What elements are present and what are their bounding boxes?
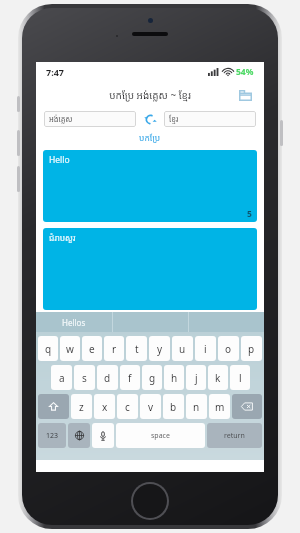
staticText: r bbox=[112, 342, 117, 356]
button[interactable]: Change keyboard language bbox=[68, 423, 90, 448]
button[interactable]: y bbox=[149, 336, 170, 361]
staticText: a bbox=[59, 371, 65, 385]
staticText: v bbox=[148, 400, 154, 414]
button[interactable]: c bbox=[117, 394, 138, 419]
button[interactable]: r bbox=[104, 336, 124, 361]
staticText: n bbox=[193, 400, 200, 414]
staticText: c bbox=[125, 400, 130, 414]
staticText: បកប្រែ bbox=[139, 132, 161, 144]
staticText: l bbox=[239, 371, 242, 385]
button[interactable]: z bbox=[71, 394, 92, 419]
button[interactable]: x bbox=[94, 394, 115, 419]
staticText: d bbox=[104, 371, 111, 385]
staticText: Hellos bbox=[62, 317, 86, 328]
button[interactable]: n bbox=[186, 394, 207, 419]
button[interactable]: v bbox=[140, 394, 161, 419]
staticText: 5 bbox=[247, 208, 252, 220]
staticText: z bbox=[79, 400, 84, 414]
button[interactable]: m bbox=[209, 394, 230, 419]
staticText: f bbox=[128, 371, 132, 385]
staticText: i bbox=[204, 342, 207, 356]
button[interactable]: អង់គ្លេស bbox=[44, 111, 136, 127]
staticText: o bbox=[225, 342, 232, 356]
button[interactable]: p bbox=[241, 336, 262, 361]
button[interactable]: Hello bbox=[43, 150, 257, 222]
button[interactable]: return bbox=[207, 423, 262, 448]
staticText: j bbox=[195, 371, 198, 385]
button[interactable]: ជំរាបសួរ bbox=[43, 228, 257, 310]
button[interactable]: j bbox=[186, 365, 206, 390]
staticText: s bbox=[82, 371, 87, 385]
button[interactable]: Hellos bbox=[36, 312, 112, 332]
button[interactable]: i bbox=[195, 336, 216, 361]
staticText: space bbox=[151, 431, 170, 441]
staticText: 7:47 bbox=[46, 66, 64, 78]
button[interactable]: Swap languages bbox=[136, 109, 164, 129]
staticText: w bbox=[66, 342, 74, 356]
button[interactable]: q bbox=[38, 336, 58, 361]
staticText: h bbox=[171, 371, 178, 385]
staticText: return bbox=[224, 431, 245, 441]
button[interactable]: d bbox=[97, 365, 118, 390]
button[interactable]: u bbox=[172, 336, 193, 361]
button[interactable]: k bbox=[208, 365, 228, 390]
button[interactable]: g bbox=[142, 365, 162, 390]
staticText: b bbox=[170, 400, 177, 414]
button[interactable]: a bbox=[51, 365, 72, 390]
button[interactable]: h bbox=[164, 365, 184, 390]
staticText: e bbox=[89, 342, 95, 356]
staticText: បកប្រែ អង់គ្លេស ~ ខ្មែរ bbox=[109, 88, 191, 102]
staticText: g bbox=[149, 371, 156, 385]
staticText: 54% bbox=[236, 66, 254, 78]
staticText: t bbox=[135, 342, 139, 356]
staticText: 123 bbox=[46, 431, 59, 441]
staticText: y bbox=[157, 342, 163, 356]
staticText: q bbox=[45, 342, 52, 356]
button[interactable]: l bbox=[230, 365, 250, 390]
staticText: k bbox=[215, 371, 221, 385]
button[interactable]: f bbox=[120, 365, 140, 390]
staticText: x bbox=[102, 400, 108, 414]
staticText: u bbox=[179, 342, 186, 356]
button[interactable]: ខ្មែរ bbox=[164, 111, 256, 127]
button[interactable]: b bbox=[163, 394, 184, 419]
button[interactable]: t bbox=[126, 336, 147, 361]
staticText: m bbox=[215, 400, 225, 414]
button[interactable]: e bbox=[82, 336, 102, 361]
staticText: p bbox=[248, 342, 255, 356]
button[interactable]: បកប្រែ bbox=[36, 130, 264, 146]
staticText: អង់គ្លេស bbox=[49, 114, 73, 124]
button[interactable]: Shift bbox=[38, 394, 69, 419]
staticText: ជំរាបសួរ bbox=[49, 232, 76, 244]
staticText: Hello bbox=[49, 154, 70, 166]
staticText: ខ្មែរ bbox=[169, 114, 179, 124]
button[interactable]: o bbox=[218, 336, 239, 361]
button[interactable]: Backspace bbox=[232, 394, 262, 419]
button[interactable]: space bbox=[116, 423, 205, 448]
button[interactable]: Voice input bbox=[92, 423, 114, 448]
button[interactable]: 123 bbox=[38, 423, 66, 448]
button[interactable]: w bbox=[60, 336, 80, 361]
button[interactable]: Saved translations folder bbox=[234, 84, 256, 106]
button[interactable]: s bbox=[74, 365, 95, 390]
